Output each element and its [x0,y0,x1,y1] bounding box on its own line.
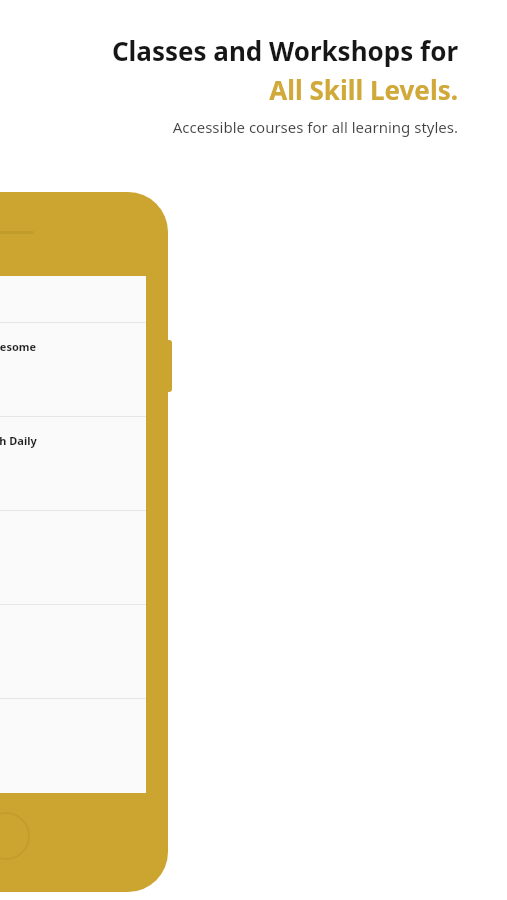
staticText: Getting Started with Daily [0,433,37,448]
other: Power button [165,340,172,392]
staticText: All Skill Levels. [269,72,458,107]
staticText: Accessible courses for all learning styl… [172,117,458,137]
button[interactable]: Welcome to the Awesome [0,323,146,416]
staticText: Welcome to the Awesome [0,339,37,354]
button[interactable]: Getting Started with Daily [0,417,146,510]
staticText: Classes and Workshops for [111,33,458,68]
